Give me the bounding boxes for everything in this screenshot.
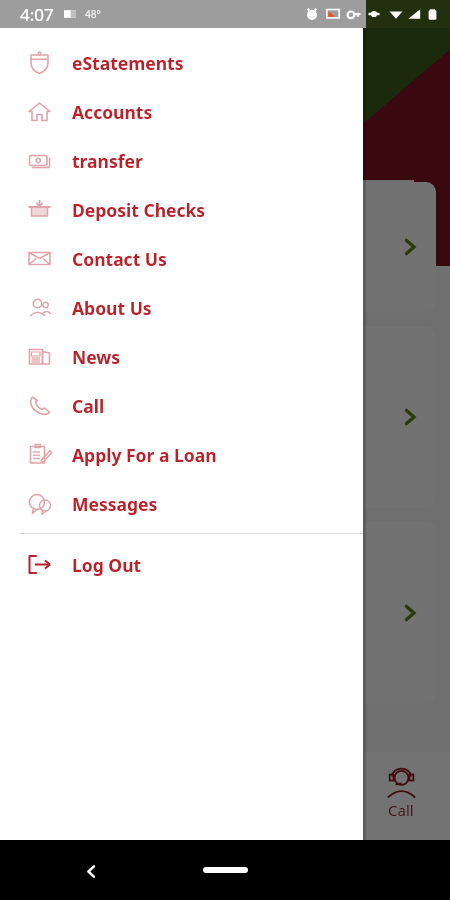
staticText: Deposit Checks [72,198,206,222]
button[interactable]: eStatements [0,38,363,87]
button[interactable] [14,326,436,508]
button[interactable]: Back [76,856,106,886]
staticText: 48° [85,7,101,21]
staticText: Contact Us [72,247,167,271]
staticText: Log Out [72,553,142,577]
button[interactable]: Accounts [0,87,363,136]
button[interactable]: About Us [0,283,363,332]
button[interactable]: Messages [0,479,363,528]
button[interactable]: Call [0,381,363,430]
button[interactable]: Apply For a Loan [0,430,363,479]
button[interactable]: Log Out [0,540,363,589]
button[interactable]: Contact Us [0,234,363,283]
staticText: Apply For a Loan [72,443,217,467]
button[interactable]: Call [374,766,428,820]
button[interactable]: Deposit Checks [0,185,363,234]
button[interactable] [14,522,436,704]
button[interactable]: transfer [0,136,363,185]
staticText: transfer [72,149,143,173]
button[interactable]: News [0,332,363,381]
staticText: 4:07 [20,3,54,26]
staticText: Call [72,394,105,418]
staticText: Accounts [72,100,153,124]
button[interactable] [14,182,436,312]
staticText: News [72,345,121,369]
staticText: eStatements [72,51,184,75]
staticText: About Us [72,296,152,320]
button[interactable]: Home [203,862,248,878]
staticText: Call [388,800,414,820]
staticText: Messages [72,492,158,516]
